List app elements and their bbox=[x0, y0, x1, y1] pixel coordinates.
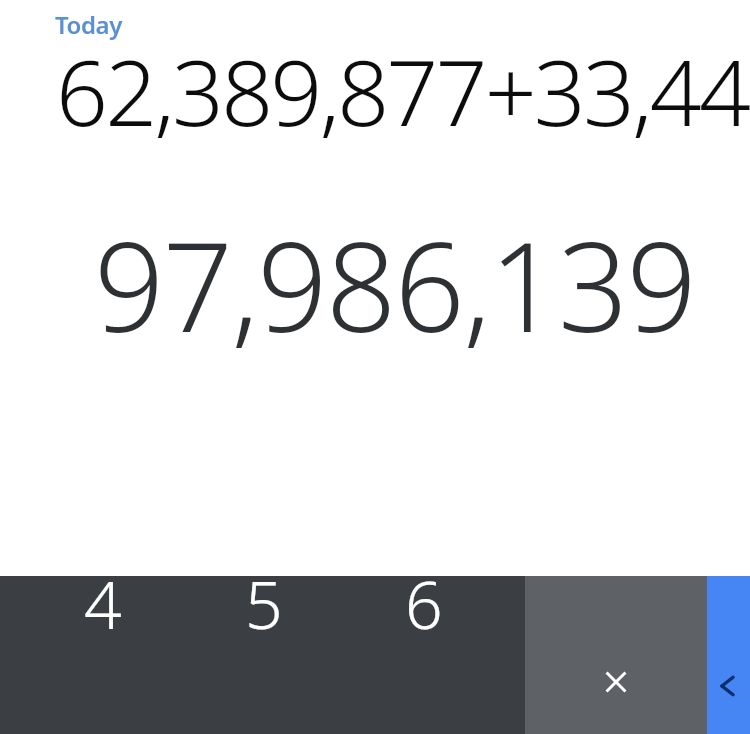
staticText: 5 bbox=[245, 558, 283, 648]
button[interactable]: 4 bbox=[0, 576, 183, 734]
staticText: 62,389,877+33,44 bbox=[56, 38, 749, 153]
button[interactable]: Today bbox=[55, 8, 122, 41]
button[interactable]: 97,986,139 bbox=[0, 220, 750, 380]
button[interactable]: 6 bbox=[344, 576, 525, 734]
button[interactable]: Back bbox=[707, 576, 750, 734]
button[interactable]: 5 bbox=[183, 576, 344, 734]
staticText: 4 bbox=[84, 558, 122, 648]
staticText: 6 bbox=[405, 558, 443, 648]
button[interactable]: Clear bbox=[525, 576, 707, 734]
button[interactable]: 62,389,877+33,44 bbox=[0, 38, 750, 188]
staticText: Today bbox=[55, 8, 122, 41]
staticText: 97,986,139 bbox=[94, 220, 696, 361]
